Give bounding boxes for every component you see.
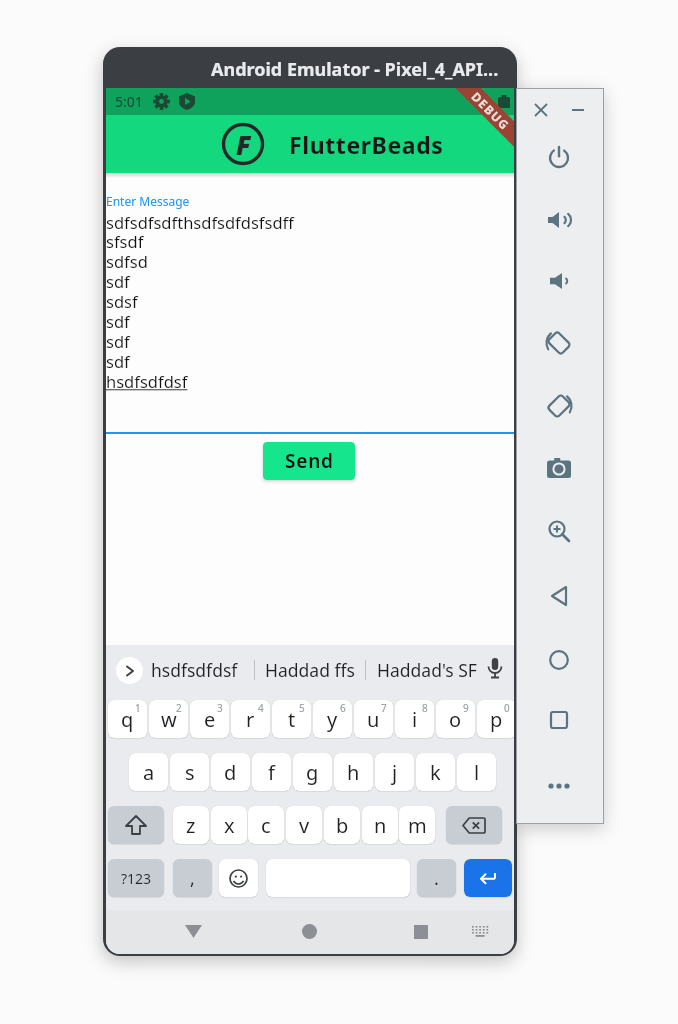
- button[interactable]: r: [231, 700, 270, 738]
- staticText: y: [327, 706, 338, 733]
- button[interactable]: b: [324, 806, 360, 844]
- staticText: t: [288, 706, 296, 733]
- button[interactable]: t: [272, 700, 311, 738]
- staticText: b: [336, 812, 349, 839]
- button[interactable]: [548, 210, 570, 230]
- button[interactable]: a: [129, 753, 168, 791]
- button[interactable]: f: [252, 753, 291, 791]
- button[interactable]: v: [286, 806, 322, 844]
- button[interactable]: [108, 806, 164, 844]
- button[interactable]: [116, 657, 143, 684]
- staticText: s: [185, 759, 195, 786]
- button[interactable]: i: [395, 700, 434, 738]
- staticText: d: [224, 759, 237, 786]
- button[interactable]: [446, 806, 502, 844]
- button[interactable]: [550, 272, 568, 290]
- button[interactable]: j: [375, 753, 414, 791]
- button[interactable]: [302, 924, 317, 939]
- button[interactable]: [549, 585, 569, 607]
- staticText: l: [474, 759, 480, 786]
- staticText: h: [347, 759, 360, 786]
- button[interactable]: [550, 711, 568, 729]
- staticText: g: [306, 759, 319, 786]
- staticText: x: [224, 812, 235, 839]
- staticText: u: [367, 706, 380, 733]
- button[interactable]: g: [293, 753, 332, 791]
- button[interactable]: w: [149, 700, 188, 738]
- staticText: F: [236, 127, 251, 162]
- staticText: o: [449, 706, 462, 733]
- staticText: Enter Message: [106, 193, 190, 209]
- staticText: Haddad's SF: [377, 658, 477, 682]
- staticText: 2: [176, 701, 182, 715]
- button[interactable]: [548, 520, 570, 542]
- staticText: n: [374, 812, 387, 839]
- button[interactable]: [185, 925, 202, 938]
- button[interactable]: [546, 393, 572, 419]
- button[interactable]: .: [417, 859, 456, 897]
- staticText: ,: [190, 866, 195, 891]
- staticText: 5:01: [115, 92, 143, 111]
- staticText: w: [161, 706, 177, 733]
- button[interactable]: c: [248, 806, 284, 844]
- button[interactable]: h: [334, 753, 373, 791]
- staticText: 6: [340, 701, 346, 715]
- staticText: e: [204, 706, 216, 733]
- button[interactable]: Send: [263, 442, 355, 480]
- button[interactable]: z: [173, 806, 209, 844]
- staticText: c: [261, 812, 271, 839]
- button[interactable]: [549, 650, 569, 670]
- staticText: 5: [299, 701, 305, 715]
- staticText: j: [392, 759, 398, 786]
- staticText: Android Emulator - Pixel_4_API...: [211, 57, 499, 82]
- staticText: Haddad ffs: [265, 658, 355, 682]
- button[interactable]: o: [436, 700, 475, 738]
- button[interactable]: [548, 783, 570, 789]
- staticText: i: [412, 706, 418, 733]
- staticText: 1: [135, 701, 141, 715]
- staticText: p: [490, 706, 503, 733]
- staticText: .: [434, 866, 439, 891]
- staticText: z: [186, 812, 196, 839]
- button[interactable]: q: [108, 700, 147, 738]
- button[interactable]: y: [313, 700, 352, 738]
- staticText: ?123: [121, 869, 152, 888]
- staticText: 9: [463, 701, 469, 715]
- staticText: Send: [285, 448, 334, 474]
- staticText: hsdfsdfdsf: [151, 658, 238, 682]
- staticText: 4: [258, 701, 264, 715]
- button[interactable]: s: [170, 753, 209, 791]
- button[interactable]: [535, 104, 547, 116]
- button[interactable]: [219, 859, 258, 897]
- staticText: 8: [422, 701, 428, 715]
- staticText: q: [121, 706, 134, 733]
- button[interactable]: l: [457, 753, 496, 791]
- button[interactable]: p: [477, 700, 514, 738]
- staticText: sdfsdfsdfthsdfsdfdsfsdff sfsdf sdfsd sdf…: [106, 211, 294, 393]
- button[interactable]: m: [399, 806, 435, 844]
- staticText: k: [430, 759, 441, 786]
- button[interactable]: [546, 330, 572, 356]
- button[interactable]: ?123: [108, 859, 164, 897]
- button[interactable]: [464, 859, 512, 897]
- button[interactable]: d: [211, 753, 250, 791]
- button[interactable]: ,: [173, 859, 212, 897]
- staticText: a: [143, 759, 155, 786]
- staticText: 7: [381, 701, 387, 715]
- button[interactable]: [548, 147, 570, 169]
- staticText: f: [268, 759, 275, 786]
- staticText: 3: [217, 701, 223, 715]
- staticText: r: [246, 706, 255, 733]
- button[interactable]: e: [190, 700, 229, 738]
- button[interactable]: k: [416, 753, 455, 791]
- button[interactable]: u: [354, 700, 393, 738]
- staticText: DEBUG: [468, 88, 514, 134]
- button[interactable]: n: [362, 806, 398, 844]
- button[interactable]: [547, 458, 571, 478]
- staticText: FlutterBeads: [289, 129, 444, 160]
- button[interactable]: x: [211, 806, 247, 844]
- staticText: 0: [504, 701, 510, 715]
